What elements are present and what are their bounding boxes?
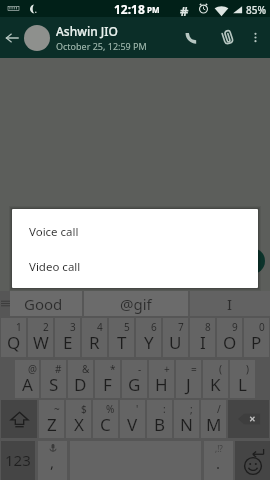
button[interactable]: Attach — [214, 17, 240, 58]
staticText: , — [50, 452, 55, 472]
button[interactable]: Enter — [235, 441, 270, 480]
button[interactable]: Call — [178, 17, 204, 58]
staticText: ; — [190, 402, 193, 416]
staticText: 8 — [205, 320, 211, 334]
button[interactable]: ) — [230, 360, 255, 398]
button[interactable]: 0 — [244, 318, 269, 357]
button[interactable]: Shift — [1, 400, 37, 438]
button[interactable]: 8 — [190, 318, 215, 357]
staticText: 5 — [124, 320, 130, 334]
button[interactable]: I — [190, 291, 270, 316]
staticText: C — [100, 413, 111, 436]
staticText: U — [169, 331, 182, 354]
button[interactable]: @gif — [84, 291, 188, 316]
staticText: F — [103, 373, 112, 396]
staticText: Good — [24, 294, 63, 314]
staticText: @gif — [120, 294, 152, 314]
button[interactable]: Good — [10, 291, 82, 316]
staticText: / — [217, 402, 221, 416]
button[interactable]: Backspace — [228, 400, 269, 438]
staticText: N — [180, 413, 193, 436]
staticText: 123 — [5, 450, 31, 470]
staticText: Voice call — [29, 224, 79, 240]
button[interactable]: = — [176, 360, 201, 398]
staticText: 4 — [97, 320, 103, 334]
staticText: ' — [136, 402, 139, 416]
button[interactable]: ' — [120, 400, 145, 438]
button[interactable]: 9 — [217, 318, 242, 357]
staticText: : — [163, 402, 166, 416]
staticText: Y — [144, 331, 154, 354]
staticText: R — [89, 331, 100, 354]
staticText: Z — [47, 413, 57, 436]
button[interactable]: Keyboard menu — [0, 291, 10, 316]
button[interactable]: 1 — [1, 318, 26, 357]
staticText: @ — [28, 362, 37, 376]
button[interactable]: & — [68, 360, 93, 398]
staticText: I — [200, 331, 206, 354]
staticText: T — [117, 331, 127, 354]
staticText: - — [138, 362, 142, 376]
button[interactable]: Video call — [12, 258, 258, 276]
staticText: P — [251, 331, 262, 354]
staticText: # — [180, 2, 189, 19]
button[interactable]: * — [95, 360, 120, 398]
staticText: * — [110, 362, 116, 376]
button[interactable]: Scroll to bottom — [239, 248, 265, 274]
staticText: & — [82, 362, 90, 376]
button[interactable]: ; — [174, 400, 199, 438]
staticText: 7 — [178, 320, 184, 334]
staticText: ( — [219, 362, 222, 376]
button[interactable]: # — [41, 360, 66, 398]
button[interactable]: / — [201, 400, 226, 438]
staticText: G — [128, 373, 141, 396]
staticText: October 25, 12:59 PM — [56, 40, 147, 52]
button[interactable]: 6 — [136, 318, 161, 357]
button[interactable]: 5 — [109, 318, 134, 357]
button[interactable]: Back — [0, 17, 24, 58]
button[interactable]: 2 — [28, 318, 53, 357]
staticText: V — [127, 413, 138, 436]
button[interactable]: , — [38, 441, 67, 480]
staticText: O — [223, 331, 237, 354]
staticText: + — [164, 362, 170, 376]
staticText: PM — [147, 4, 160, 15]
button[interactable]: : — [147, 400, 172, 438]
button[interactable]: % — [93, 400, 118, 438]
button[interactable]: 7 — [163, 318, 188, 357]
staticText: Q — [7, 331, 21, 354]
button[interactable]: 4 — [82, 318, 107, 357]
button[interactable]: 123 — [1, 441, 35, 480]
staticText: W — [33, 331, 49, 354]
staticText: # — [55, 362, 62, 376]
button[interactable]: + — [149, 360, 174, 398]
staticText: 0 — [259, 320, 265, 334]
staticText: ~ — [54, 402, 60, 416]
staticText: 1 — [16, 320, 22, 334]
staticText: % — [106, 402, 115, 416]
staticText: ) — [246, 362, 249, 376]
staticText: B — [154, 413, 166, 436]
button[interactable]: @ — [15, 360, 39, 398]
button[interactable]: ( — [203, 360, 228, 398]
staticText: L — [238, 373, 247, 396]
staticText: K — [210, 373, 221, 396]
button[interactable]: 3 — [55, 318, 80, 357]
button[interactable]: Voice call — [12, 223, 258, 241]
button[interactable]: - — [122, 360, 147, 398]
staticText: Ashwin JIO — [56, 23, 118, 39]
button[interactable]: $ — [66, 400, 91, 438]
staticText: I — [227, 294, 233, 314]
staticText: $ — [81, 402, 87, 416]
button[interactable]: More options — [244, 17, 266, 58]
staticText: ,!? — [215, 443, 223, 454]
staticText: 3 — [70, 320, 76, 334]
staticText: E — [63, 331, 73, 354]
button[interactable]: ,!? — [204, 441, 233, 480]
staticText: M — [206, 413, 222, 436]
button[interactable]: ~ — [39, 400, 64, 438]
staticText: A — [22, 373, 33, 396]
staticText: 9 — [232, 320, 238, 334]
staticText: H — [155, 373, 168, 396]
